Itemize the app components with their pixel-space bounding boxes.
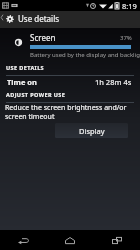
staticText: USE DETAILS — [6, 64, 45, 71]
button[interactable]: Navigate up — [0, 11, 140, 28]
staticText: Use details — [18, 13, 60, 24]
staticText: 1h 28m 4s — [95, 77, 132, 87]
button[interactable]: Display — [55, 123, 128, 138]
button[interactable]: Home — [46, 230, 93, 250]
staticText: Screen — [30, 32, 56, 43]
staticText: Reduce the screen brightness and/or scre… — [5, 103, 127, 121]
button[interactable]: Time on — [0, 76, 140, 92]
staticText: Battery used by the display and backligh… — [30, 51, 140, 59]
button[interactable]: Recent apps — [93, 230, 140, 250]
staticText: 8:19 — [122, 1, 137, 11]
staticText: Display — [79, 126, 105, 136]
staticText: ADJUST POWER USE — [6, 91, 66, 98]
staticText: 37% — [120, 34, 132, 42]
button[interactable]: Back — [0, 230, 46, 250]
staticText: Time on — [7, 77, 37, 87]
